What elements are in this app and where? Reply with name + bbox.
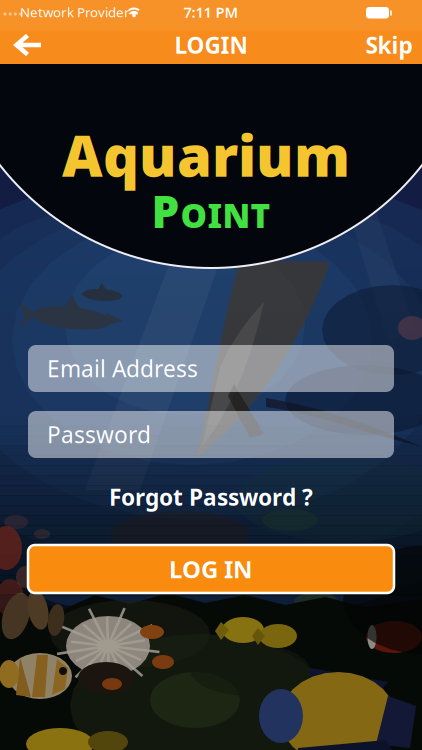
staticText: Email Address (47, 353, 198, 383)
staticText: 7:11 PM (183, 2, 238, 22)
button[interactable]: Skip (365, 30, 412, 60)
staticText: LOGIN (174, 30, 247, 60)
staticText: OINT (180, 193, 270, 237)
staticText: Network Provider (20, 3, 130, 21)
staticText: Aquarium (62, 118, 350, 192)
button[interactable]: Password (28, 411, 394, 458)
button[interactable]: Email Address (28, 345, 394, 392)
staticText: Password (47, 419, 151, 449)
staticText: Skip (365, 30, 412, 60)
staticText: LOG IN (169, 553, 253, 585)
staticText: P (151, 182, 179, 240)
staticText: Forgot Password ? (109, 482, 313, 512)
button[interactable]: Forgot Password ? (109, 482, 313, 512)
button[interactable]: LOG IN (28, 545, 394, 593)
button[interactable]: Back (0, 0, 54, 64)
